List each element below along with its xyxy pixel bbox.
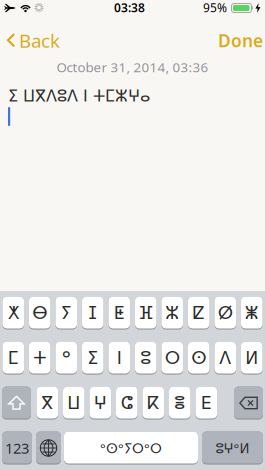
staticText: 123 [5,438,29,458]
staticText: ⵡ [67,393,80,413]
button[interactable]: ⵅ [2,296,24,329]
button[interactable]: Space [64,431,198,464]
button[interactable]: ⴷ [214,341,236,374]
button[interactable]: ⴽ [142,386,164,419]
staticText: ⵁ [218,303,233,323]
button[interactable]: Delete [234,386,263,419]
button[interactable]: ⵜ [29,341,51,374]
staticText: ⵛ [121,393,133,413]
button[interactable]: ⵎ [2,341,24,374]
staticText: ⵥ [245,303,259,323]
button[interactable]: ⵉ [82,341,104,374]
button[interactable]: Return [202,431,263,464]
button[interactable]: ⴼ [135,296,157,329]
staticText: ⴱ [32,303,47,323]
button[interactable]: ⵓ [135,341,157,374]
staticText: ⵜ [33,348,46,368]
staticText: ⴻ [174,393,186,413]
staticText: ⴳ [41,393,53,413]
button[interactable]: ⴹ [195,386,217,419]
staticText: ⵎ [8,348,19,368]
button[interactable]: ⵡ [63,386,85,419]
button[interactable]: ⵁ [214,296,236,329]
button[interactable]: ⴱ [29,296,51,329]
button[interactable]: ⴰ [55,341,77,374]
staticText: ⵓ [140,348,151,368]
staticText: ° [62,344,71,372]
staticText: ⴹ [201,393,212,413]
staticText: October 31, 2014, 03:36 [56,58,208,76]
button[interactable]: Shift [2,386,31,419]
staticText: Done [218,29,263,52]
staticText: ⴷ [219,348,231,368]
button[interactable]: ⵔ [161,341,183,374]
button[interactable]: ⵣ [161,296,183,329]
staticText: ⵇ [193,303,205,323]
staticText: ⵉ ⵡⴳⴷⵓⴷ ⵏ ⵜⵎⵣⵖⴰ [8,87,150,105]
staticText: °ⵙ°ⵢⵔ°ⵔ [100,439,162,457]
button[interactable]: ⴳ [36,386,58,419]
staticText: ⵟ [114,303,125,323]
staticText: Back [19,28,60,53]
staticText: 95% [203,0,227,15]
button[interactable]: Next keyboard [36,431,61,464]
staticText: ⵅ [8,303,19,323]
staticText: ⵙ [191,348,206,368]
button[interactable]: ⵟ [108,296,130,329]
staticText: ⵏ [117,348,122,368]
button[interactable]: ⵙ [188,341,210,374]
button[interactable]: 123 [2,431,32,464]
staticText: ⵖ [94,393,107,413]
button[interactable]: ⵖ [89,386,111,419]
staticText: ⴼ [138,303,153,323]
button[interactable]: ⵍ [241,341,263,374]
staticText: ⵓⵖ°ⵍ [215,439,249,457]
button[interactable]: Back [7,28,60,53]
staticText: ⵉ [87,348,98,368]
button[interactable]: ⵛ [116,386,138,419]
staticText: 03:38 [114,0,145,15]
staticText: ⵢ [61,303,72,323]
staticText: ⵔ [165,348,180,368]
staticText: ⴽ [147,393,159,413]
staticText: ⵣ [165,303,179,323]
button[interactable]: ⵊ [82,296,104,329]
button[interactable]: ⵏ [108,341,130,374]
button[interactable]: ⵢ [55,296,77,329]
button[interactable]: ⵥ [241,296,263,329]
staticText: ⵍ [245,348,258,368]
button[interactable]: Done [218,29,263,52]
button[interactable]: ⴻ [169,386,191,419]
staticText: ⵊ [88,303,97,323]
button[interactable]: ⵇ [188,296,210,329]
